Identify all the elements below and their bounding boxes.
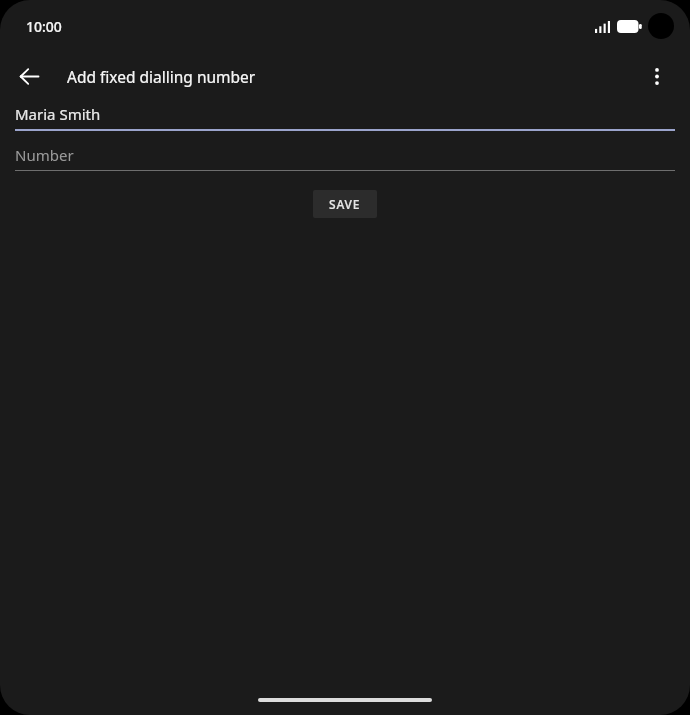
staticText: Maria Smith — [15, 104, 101, 124]
button[interactable]: More options — [633, 52, 681, 100]
staticText: SAVE — [329, 196, 361, 212]
button[interactable]: SAVE — [313, 190, 377, 218]
staticText: Number — [15, 145, 74, 165]
button[interactable]: Number — [15, 145, 675, 171]
staticText: 10:00 — [26, 17, 62, 36]
button[interactable]: Maria Smith — [15, 104, 675, 131]
staticText: Add fixed dialling number — [67, 66, 256, 87]
button[interactable]: Back — [5, 52, 53, 100]
